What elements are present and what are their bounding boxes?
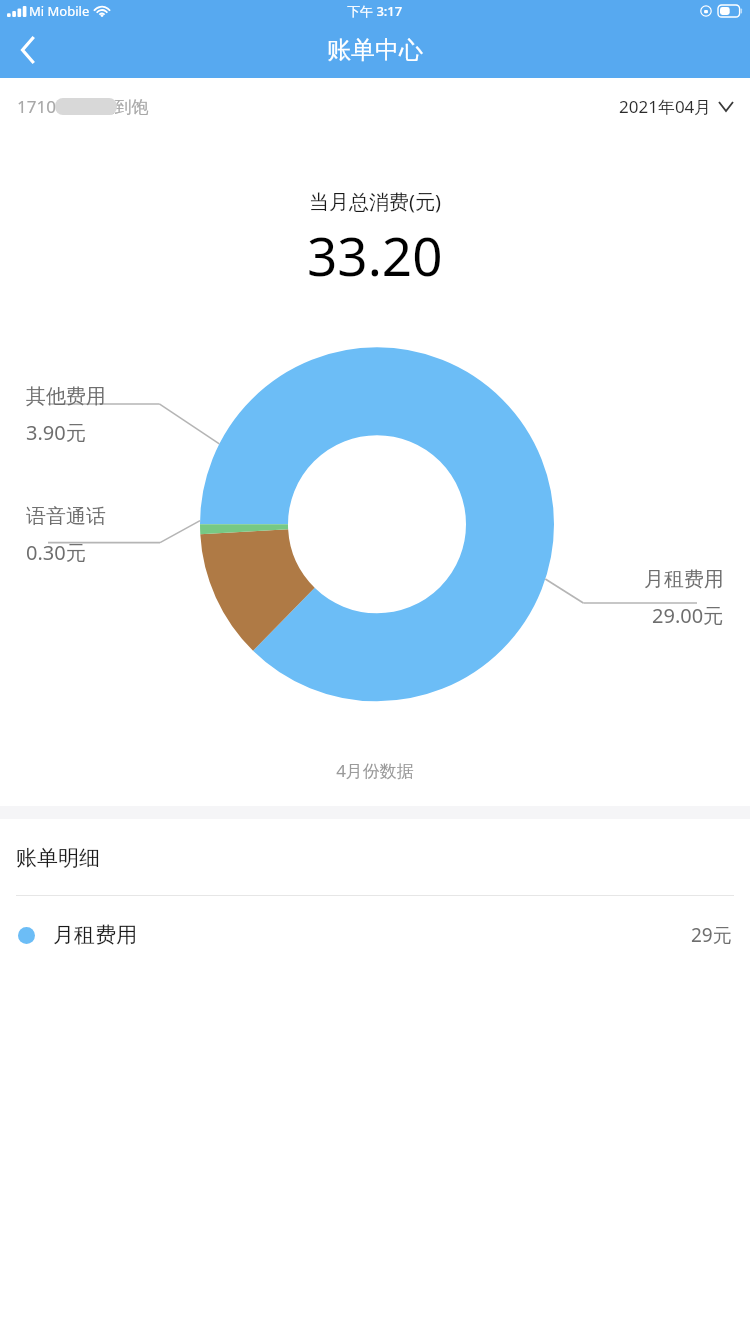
button[interactable]: 月租费用: [0, 896, 750, 974]
staticText: 1710 82 吃到饱: [17, 95, 149, 118]
staticText: 当月总消费(元): [309, 188, 441, 215]
button[interactable]: 2021年04月: [619, 95, 733, 118]
staticText: 2021年04月: [619, 95, 712, 118]
staticText: 4月份数据: [0, 759, 750, 782]
staticText: 下午 3:17: [347, 2, 403, 20]
staticText: 33.20: [307, 219, 443, 291]
staticText: Mi Mobile: [29, 2, 90, 20]
staticText: 3.90元: [26, 419, 86, 446]
staticText: 语音通话: [26, 504, 106, 529]
staticText: 月租费用: [644, 567, 724, 592]
button[interactable]: Back: [0, 22, 56, 78]
staticText: 月租费用: [53, 922, 137, 948]
staticText: 其他费用: [26, 384, 106, 409]
staticText: 29.00元: [652, 602, 724, 629]
staticText: 29元: [691, 922, 732, 948]
staticText: 账单中心: [327, 35, 423, 65]
staticText: 账单明细: [16, 845, 100, 871]
staticText: 0.30元: [26, 539, 86, 566]
